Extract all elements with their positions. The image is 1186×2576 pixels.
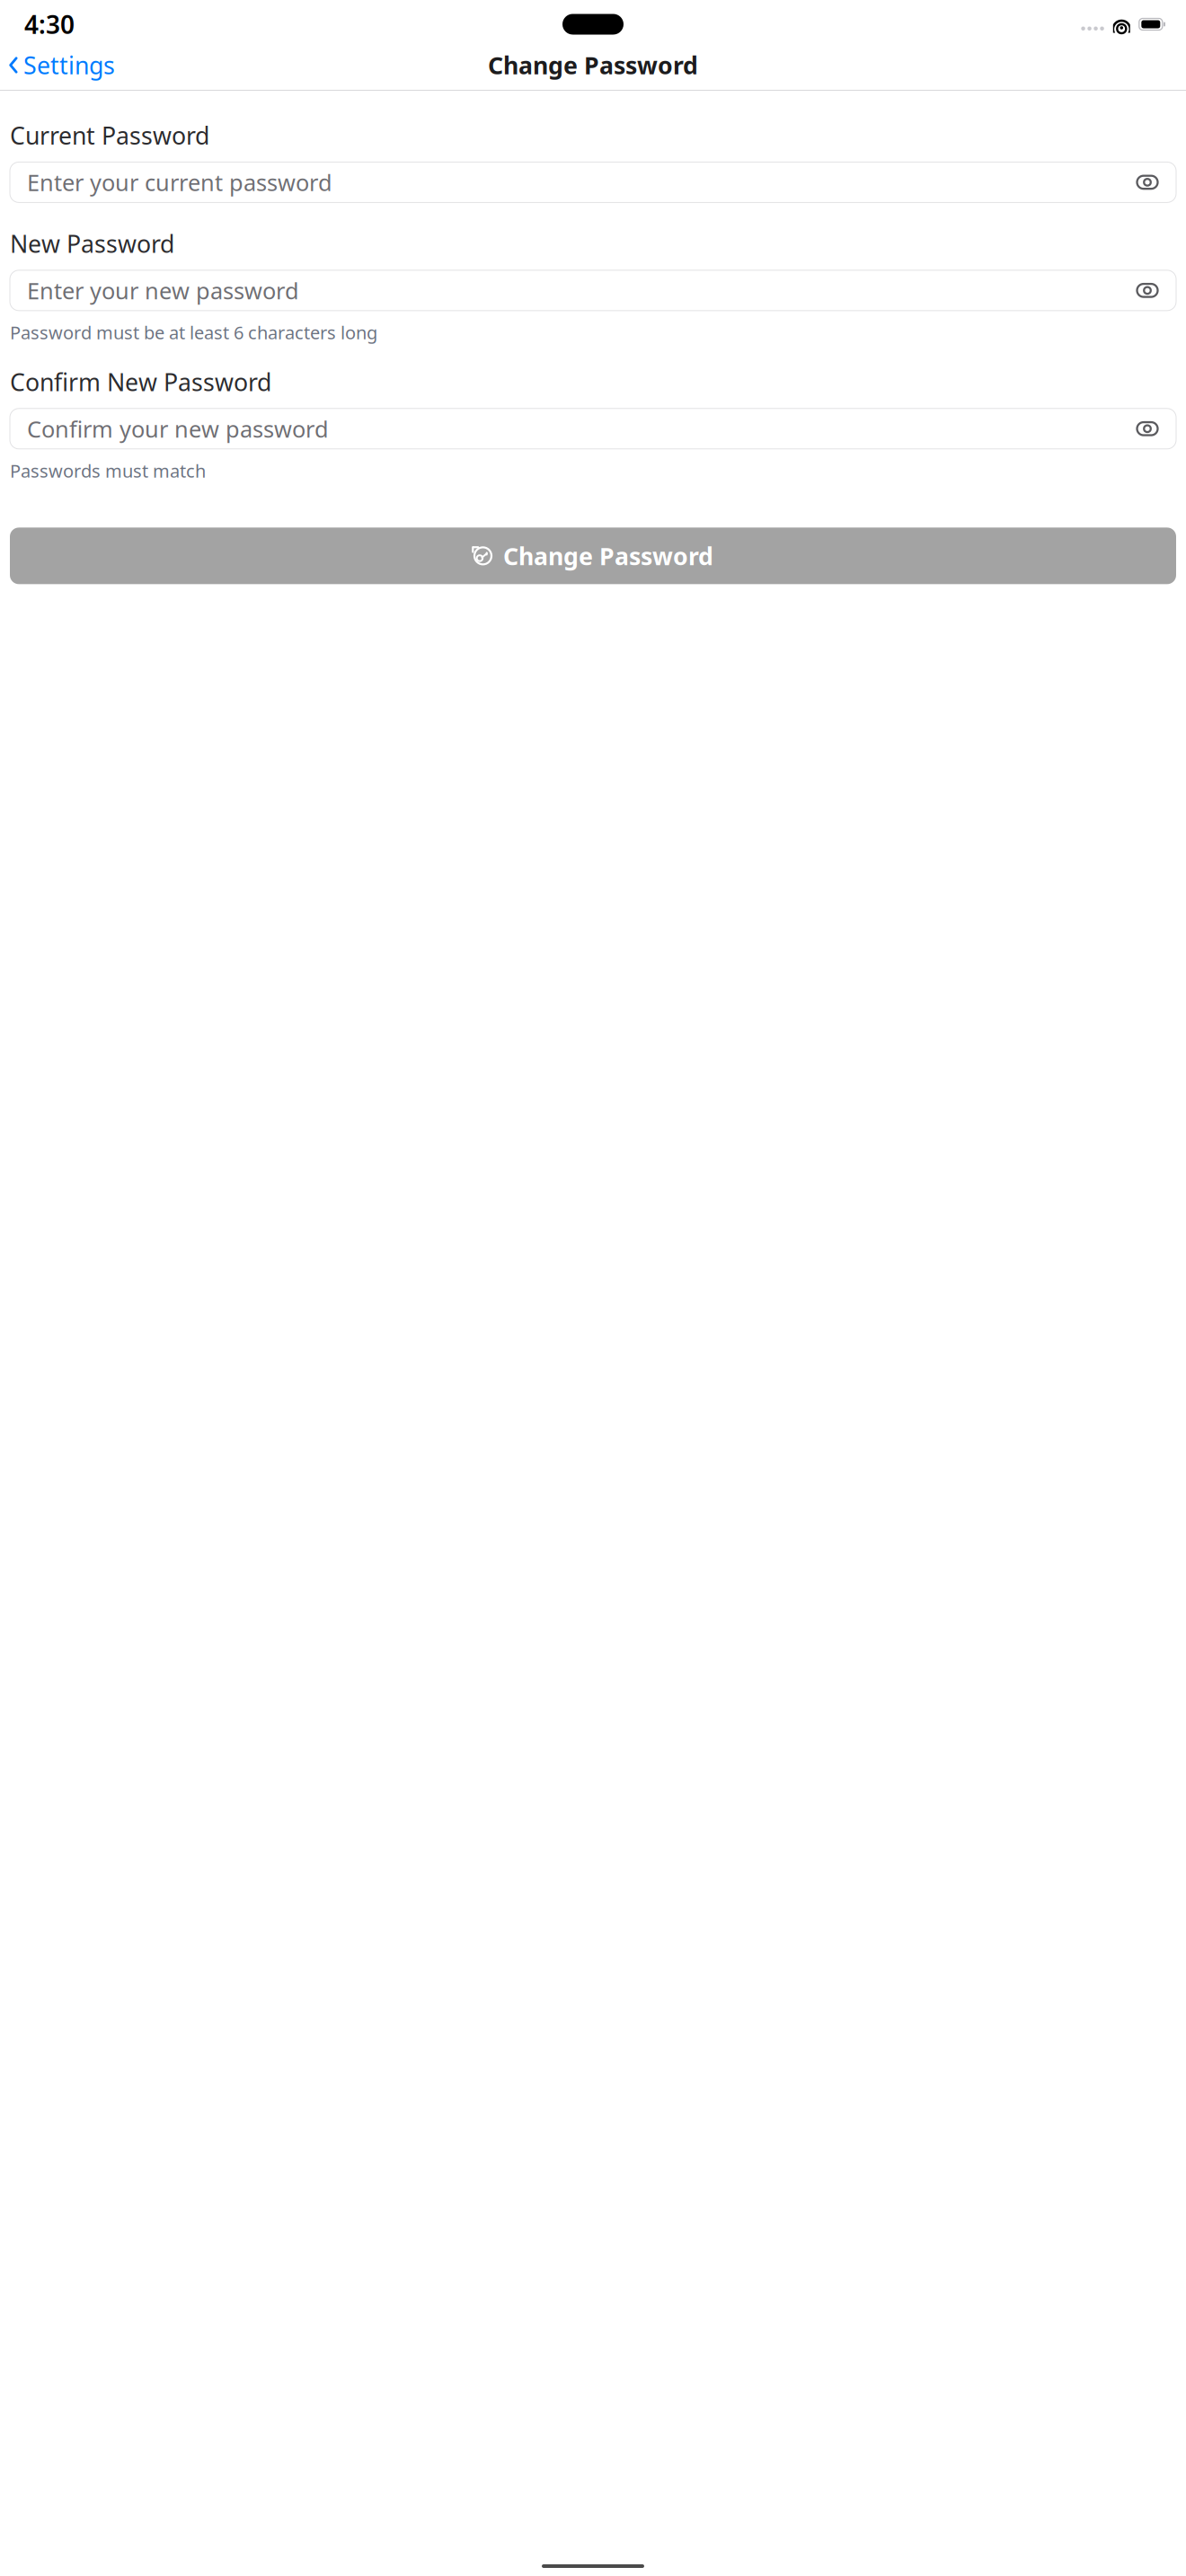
staticText: Password must be at least 6 characters l… [10,320,377,344]
staticText: Passwords must match [10,459,206,483]
staticText: Change Password [488,49,698,81]
staticText: New Password [10,228,174,259]
staticText: Change Password [503,540,713,572]
staticText: Current Password [10,119,209,151]
staticText: 4:30 [24,8,75,41]
button[interactable]: Show confirmed password [1128,413,1167,445]
staticText: Confirm New Password [10,366,271,398]
button[interactable]: Settings [0,44,115,86]
button[interactable]: Show new password [1128,274,1167,307]
button[interactable]: Change Password [10,528,1176,584]
button[interactable]: Show current password [1128,166,1167,198]
staticText: Enter your new password [27,275,299,305]
staticText: Enter your current password [27,167,332,197]
staticText: Confirm your new password [27,414,329,444]
staticText: Settings [23,49,115,81]
